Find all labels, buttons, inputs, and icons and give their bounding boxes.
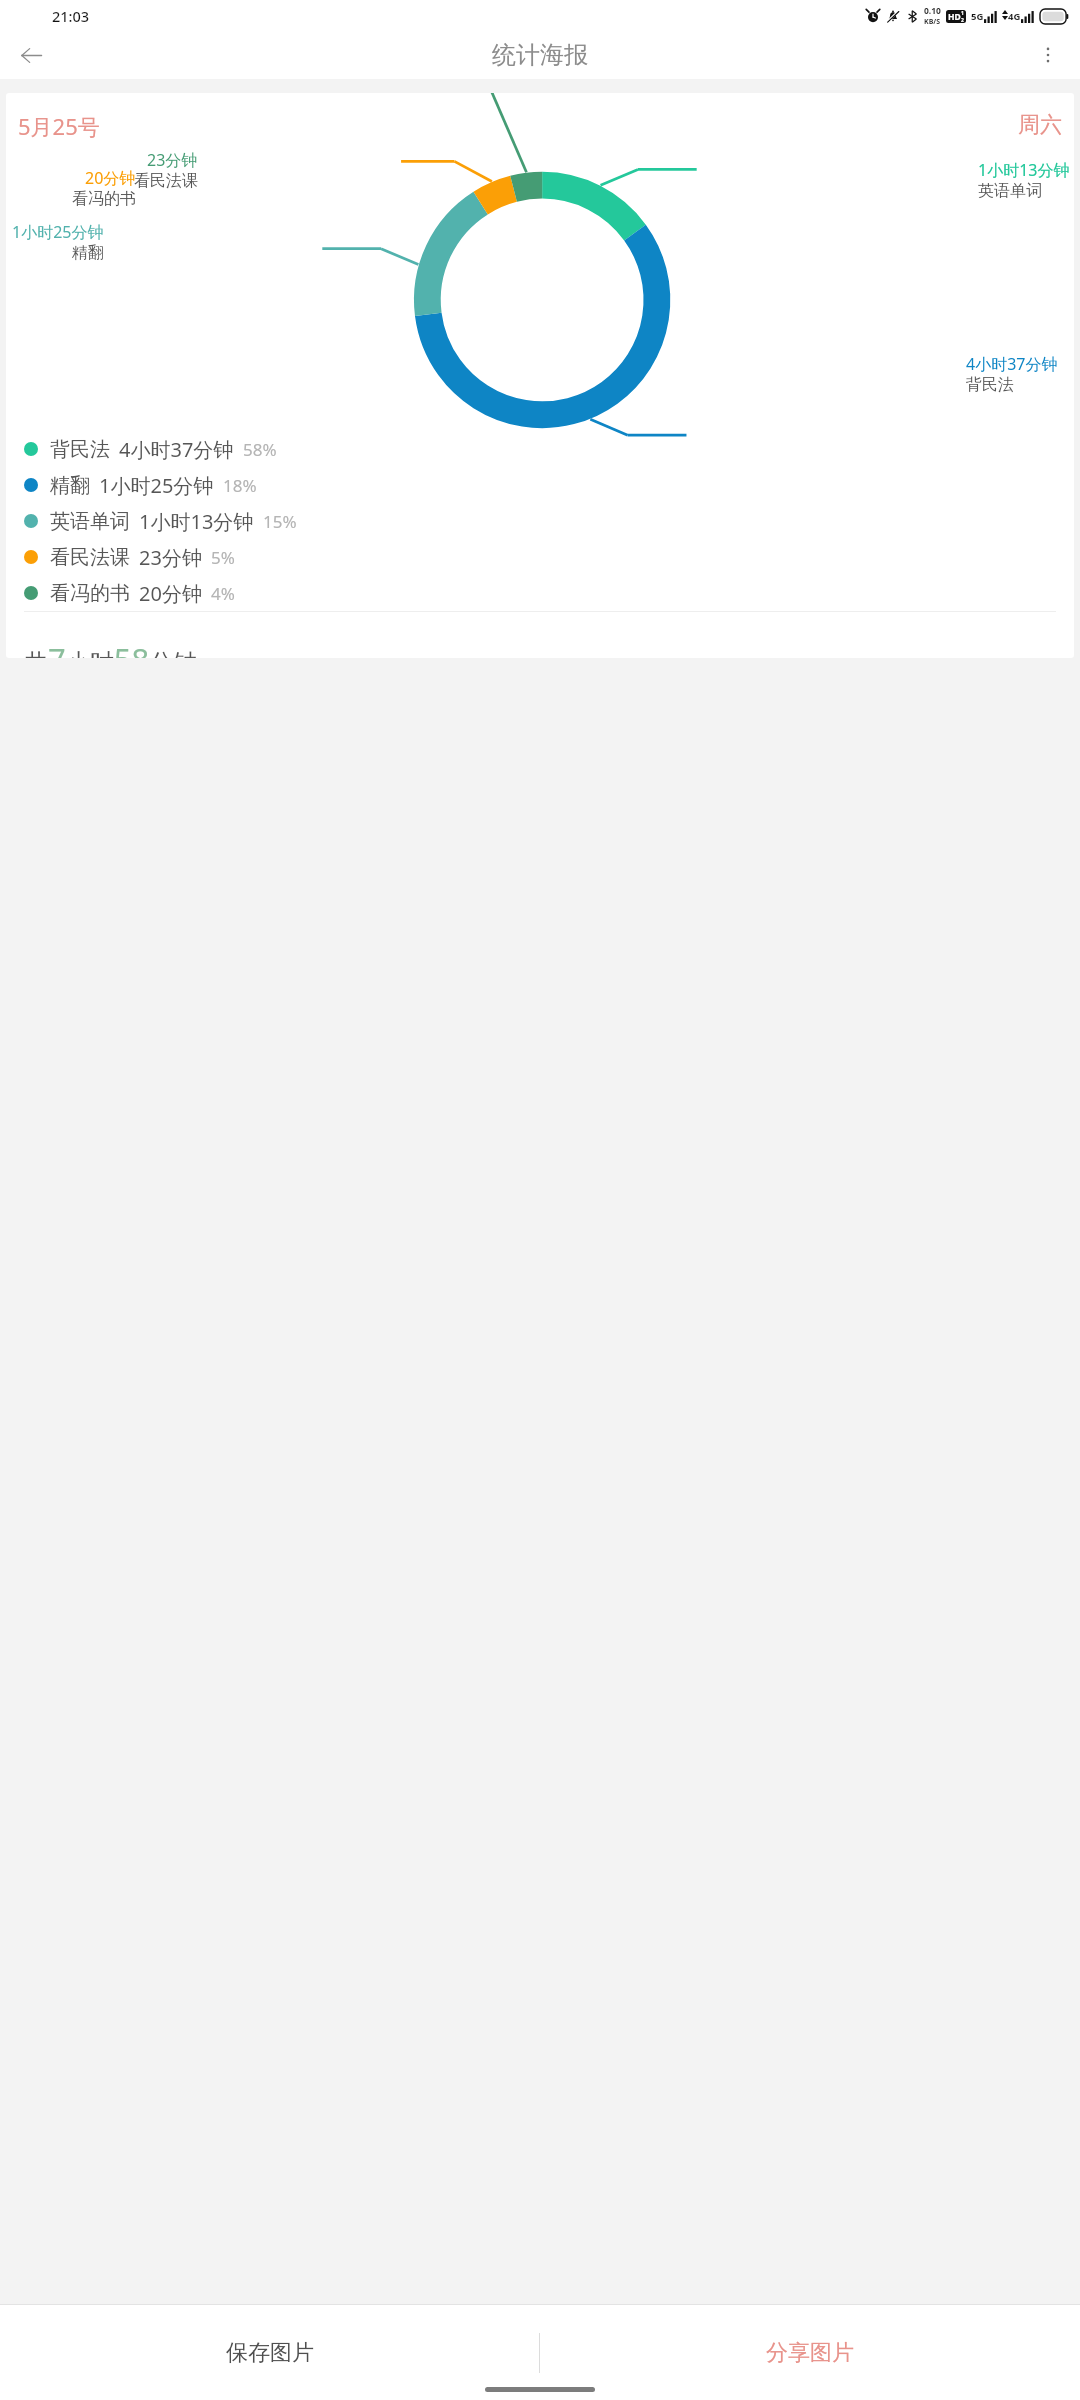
button[interactable]: 保存图片	[0, 2305, 539, 2400]
staticText: 英语单词	[978, 181, 1042, 201]
staticText: 背民法	[50, 437, 110, 462]
staticText: 4小时37分钟	[119, 436, 234, 463]
staticText: 统计海报	[492, 40, 588, 70]
button[interactable]: 看冯的书	[24, 575, 1074, 611]
button[interactable]: 看民法课	[24, 539, 1074, 575]
staticText: 4小时37分钟	[966, 353, 1058, 375]
staticText: 1小时13分钟	[978, 159, 1070, 181]
staticText: 周六	[1018, 111, 1062, 139]
staticText: 20分钟	[139, 580, 202, 607]
staticText: 分享图片	[766, 2339, 854, 2367]
staticText: 精翻	[72, 243, 104, 263]
staticText: 4G	[1008, 10, 1021, 23]
button[interactable]: 分享图片	[540, 2305, 1080, 2400]
staticText: 23分钟	[139, 544, 202, 571]
staticText: 23分钟	[147, 149, 198, 171]
staticText: 英语单词	[50, 509, 130, 534]
staticText: 共7小时58分钟	[24, 638, 198, 658]
staticText: 5月25号	[18, 111, 100, 141]
staticText: 看冯的书	[50, 581, 130, 606]
staticText: 保存图片	[226, 2339, 314, 2367]
staticText: 15%	[263, 510, 297, 533]
staticText: 1小时13分钟	[139, 508, 254, 535]
staticText: 精翻	[50, 473, 90, 498]
staticText: 看民法课	[50, 545, 130, 570]
button[interactable]: 背民法	[24, 431, 1074, 467]
staticText: 2	[961, 17, 964, 23]
staticText: 1小时25分钟	[99, 472, 214, 499]
staticText: 18%	[223, 474, 257, 497]
staticText: 背民法	[966, 375, 1014, 395]
staticText: 21:03	[52, 6, 90, 26]
button[interactable]: 英语单词	[24, 503, 1074, 539]
staticText: 看冯的书	[72, 189, 136, 209]
staticText: 1小时25分钟	[12, 221, 104, 243]
staticText: 看民法课	[134, 171, 198, 191]
staticText: 5%	[211, 546, 235, 569]
staticText: 5G	[971, 10, 984, 23]
button[interactable]: 精翻	[24, 467, 1074, 503]
staticText: 0.10	[924, 5, 941, 17]
staticText: HD	[948, 11, 961, 23]
staticText: 1	[961, 10, 964, 17]
staticText: KB/S	[924, 17, 941, 27]
button[interactable]: Back	[10, 34, 52, 76]
button[interactable]: More options	[1027, 34, 1069, 76]
staticText: 58%	[243, 438, 277, 461]
staticText: 20分钟	[85, 167, 136, 189]
staticText: 4%	[211, 582, 235, 605]
